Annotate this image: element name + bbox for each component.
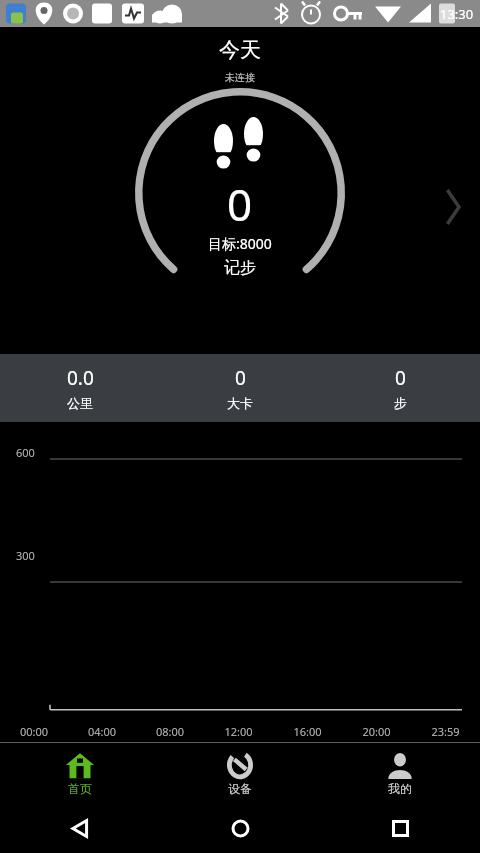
staticText: 目标:8000	[208, 234, 272, 253]
staticText: 600	[16, 445, 35, 460]
staticText: 0	[227, 174, 253, 234]
staticText: 23:59	[411, 724, 480, 739]
staticText: 0.0	[67, 365, 94, 391]
staticText: 步	[394, 395, 407, 411]
button[interactable]: Next	[430, 184, 476, 230]
button[interactable]: 设备	[160, 743, 320, 804]
staticText: 设备	[228, 781, 252, 796]
button[interactable]: Recents	[320, 804, 480, 853]
staticText: 大卡	[227, 395, 253, 411]
staticText: 公里	[67, 395, 93, 411]
button[interactable]: 首页	[0, 743, 160, 804]
staticText: 未连接	[0, 71, 480, 84]
button[interactable]: 0	[160, 354, 320, 422]
staticText: 我的	[388, 781, 412, 796]
staticText: 08:00	[136, 724, 204, 739]
button[interactable]: Home	[160, 804, 320, 853]
button[interactable]: Back	[0, 804, 160, 853]
staticText: 记步	[224, 258, 256, 278]
staticText: 16:00	[273, 724, 342, 739]
staticText: 13:30	[440, 5, 474, 23]
staticText: 20:00	[342, 724, 411, 739]
staticText: 12:00	[204, 724, 273, 739]
button[interactable]: 我的	[320, 743, 480, 804]
staticText: 0	[235, 365, 246, 391]
staticText: 首页	[68, 781, 92, 796]
button[interactable]: 0	[320, 354, 480, 422]
staticText: 04:00	[68, 724, 136, 739]
staticText: 今天	[0, 37, 480, 63]
staticText: 00:00	[0, 724, 68, 739]
staticText: 0	[395, 365, 406, 391]
staticText: 300	[16, 548, 35, 563]
button[interactable]: 0	[135, 88, 345, 298]
button[interactable]: 0.0	[0, 354, 160, 422]
